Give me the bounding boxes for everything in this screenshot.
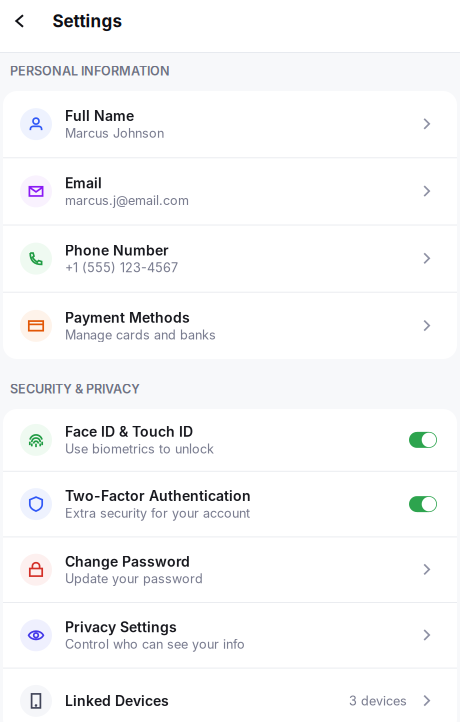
staticText: marcus.j@email.com xyxy=(65,193,189,208)
staticText: Phone Number xyxy=(65,242,169,259)
staticText: SECURITY & PRIVACY xyxy=(10,381,140,397)
button[interactable]: Full Name xyxy=(3,91,457,157)
staticText: Linked Devices xyxy=(65,692,169,709)
staticText: +1 (555) 123-4567 xyxy=(65,260,178,275)
staticText: Control who can see your info xyxy=(65,637,245,652)
staticText: Update your password xyxy=(65,571,203,586)
button[interactable]: Email xyxy=(3,158,457,224)
staticText: Marcus Johnson xyxy=(65,125,164,141)
button[interactable]: Change Password xyxy=(3,537,457,602)
button[interactable]: Two-Factor Authentication xyxy=(3,472,457,536)
staticText: Manage cards and banks xyxy=(65,327,216,342)
staticText: Settings xyxy=(52,11,122,31)
staticText: Use biometrics to unlock xyxy=(65,441,214,456)
staticText: 3 devices xyxy=(349,693,407,708)
button[interactable]: Privacy Settings xyxy=(3,603,457,668)
staticText: Full Name xyxy=(65,107,134,124)
staticText: Two-Factor Authentication xyxy=(65,487,251,504)
staticText: Payment Methods xyxy=(65,309,190,326)
staticText: Email xyxy=(65,175,102,192)
button[interactable]: Linked Devices xyxy=(3,669,457,722)
staticText: PERSONAL INFORMATION xyxy=(10,63,170,79)
staticText: Change Password xyxy=(65,553,190,570)
button[interactable]: Face ID & Touch ID xyxy=(3,409,457,471)
button[interactable]: Back xyxy=(0,0,52,42)
staticText: Extra security for your account xyxy=(65,505,250,521)
button[interactable]: Payment Methods xyxy=(3,293,457,359)
staticText: Face ID & Touch ID xyxy=(65,423,193,440)
button[interactable]: Phone Number xyxy=(3,225,457,292)
staticText: Privacy Settings xyxy=(65,619,177,636)
